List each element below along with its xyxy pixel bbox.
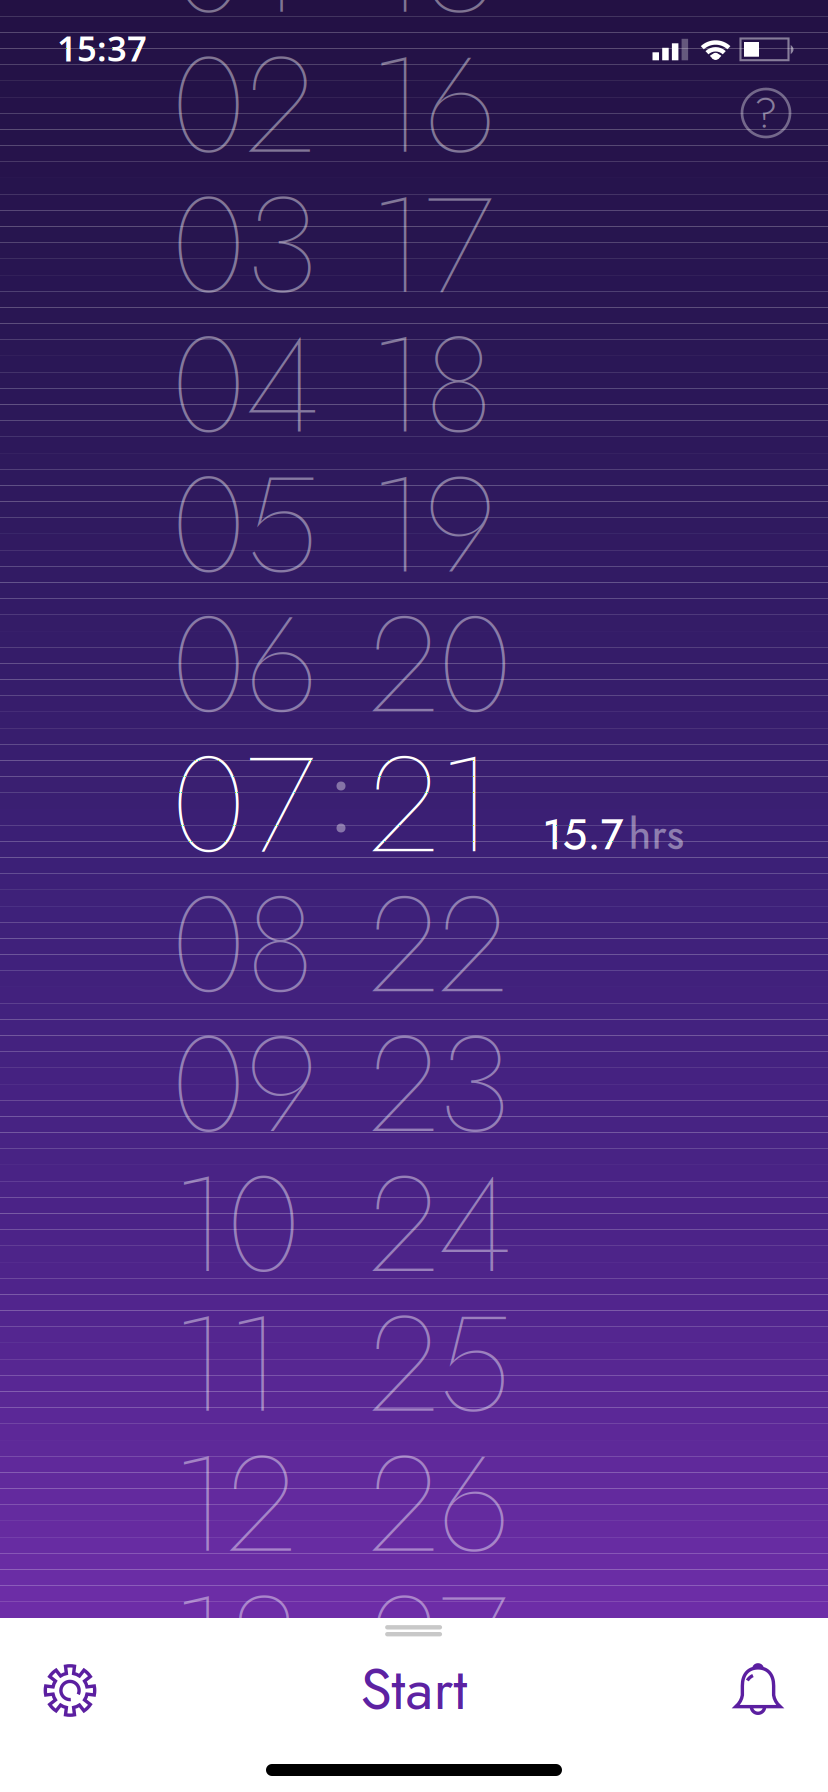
staticText: 08: [171, 848, 314, 1041]
staticText: 01: [171, 0, 300, 62]
staticText: 22: [369, 848, 507, 1041]
staticText: hrs: [628, 803, 684, 865]
staticText: 04: [171, 289, 319, 482]
staticText: 07: [171, 709, 314, 901]
staticText: 10: [171, 1128, 300, 1321]
staticText: 15:37: [57, 25, 147, 71]
staticText: 18: [369, 289, 493, 482]
button[interactable]: [44, 1664, 96, 1716]
staticText: 21: [369, 709, 493, 901]
staticText: 23: [369, 988, 511, 1181]
button[interactable]: ?: [742, 89, 790, 137]
staticText: ?: [754, 82, 778, 144]
staticText: 06: [171, 569, 317, 761]
staticText: 11: [171, 1268, 281, 1461]
staticText: 03: [171, 149, 318, 342]
staticText: 15: [369, 0, 498, 62]
staticText: 02: [171, 9, 314, 202]
staticText: Start: [360, 1648, 467, 1730]
staticText: 15.7: [542, 803, 623, 865]
staticText: 09: [171, 988, 317, 1181]
staticText: 19: [369, 429, 496, 621]
staticText: 27: [369, 1548, 507, 1741]
staticText: 13: [171, 1548, 299, 1741]
staticText: 16: [369, 9, 496, 202]
staticText: 25: [369, 1268, 512, 1461]
staticText: 05: [171, 429, 319, 621]
staticText: 24: [369, 1128, 512, 1321]
button[interactable]: [735, 1664, 781, 1716]
staticText: 20: [369, 569, 512, 761]
staticText: 26: [369, 1408, 510, 1601]
staticText: 17: [369, 149, 493, 342]
staticText: 12: [171, 1408, 295, 1601]
button[interactable]: Start: [360, 1648, 467, 1730]
